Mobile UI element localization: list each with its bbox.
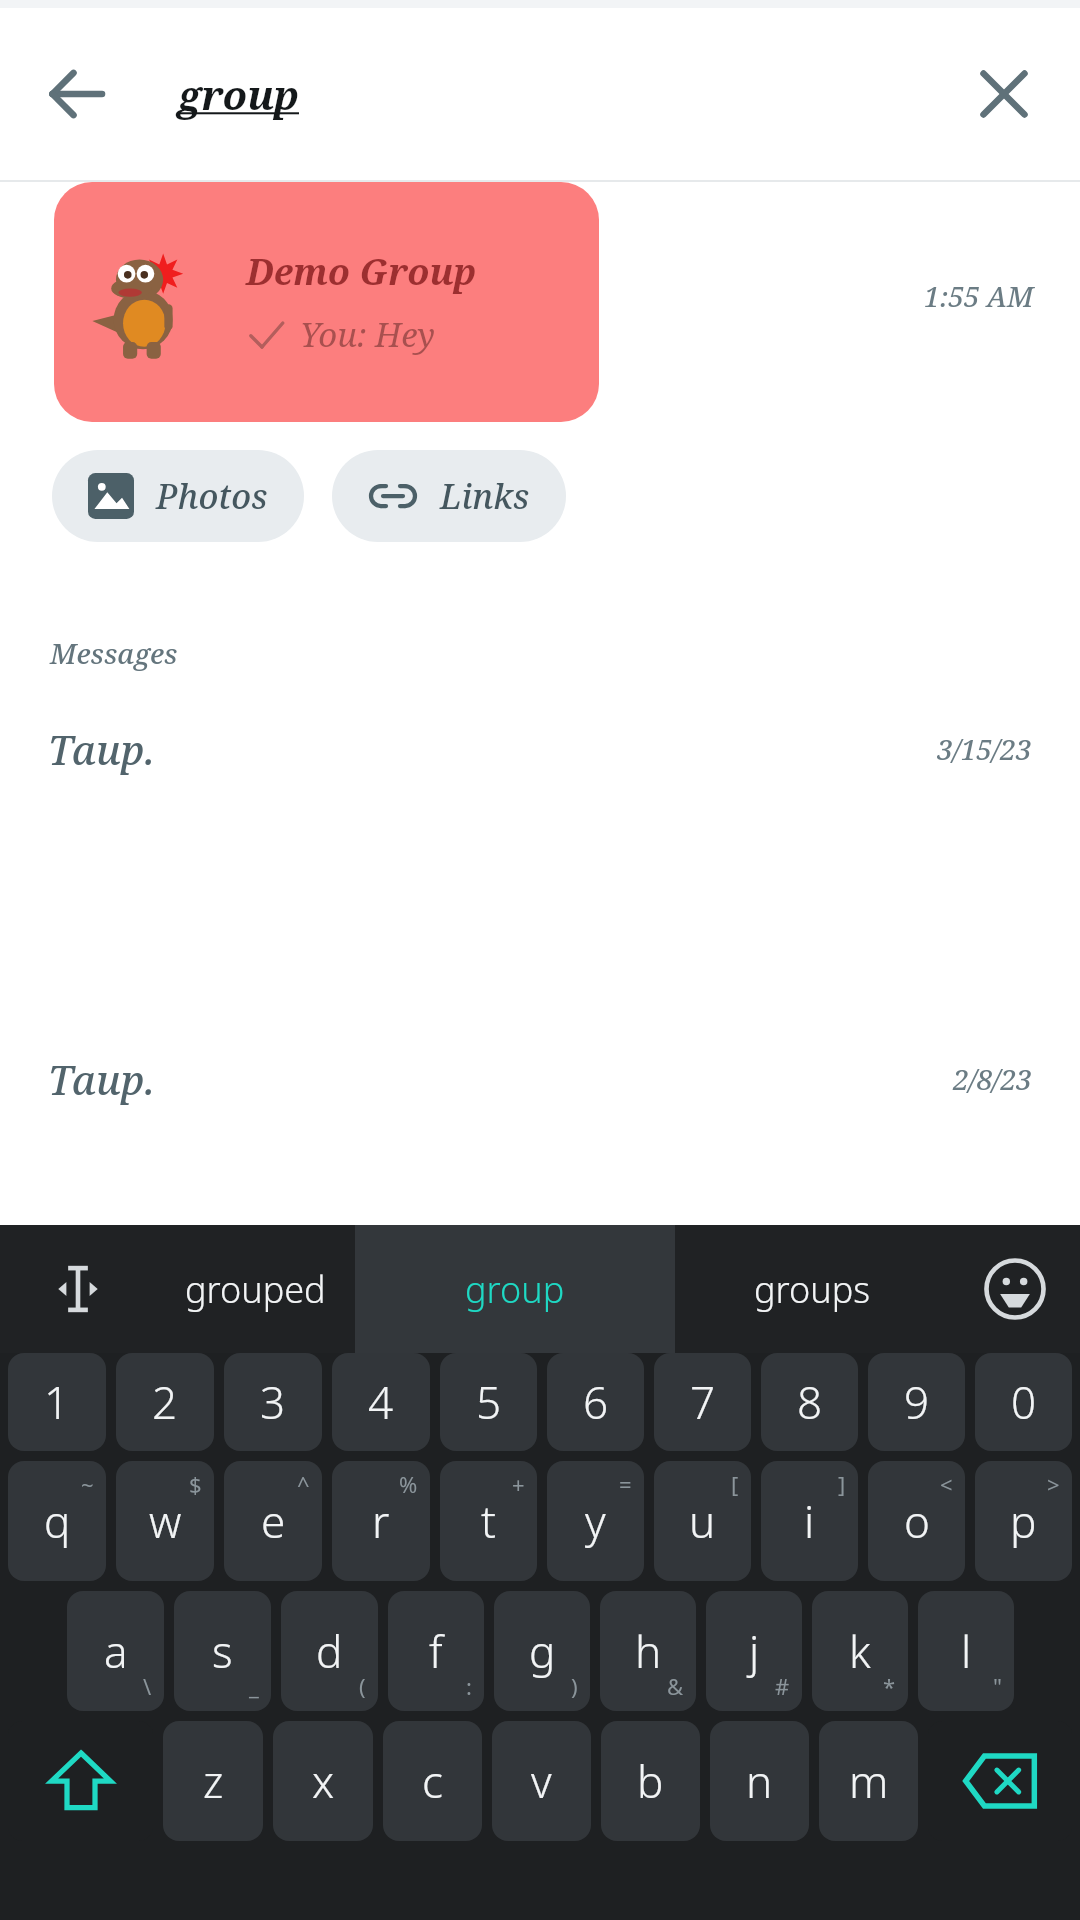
button[interactable]: 3 <box>224 1353 322 1451</box>
staticText: # <box>775 1671 790 1701</box>
button[interactable]: 0 <box>975 1353 1072 1451</box>
button[interactable]: f <box>388 1591 484 1711</box>
staticText: r <box>372 1491 390 1551</box>
button[interactable]: c <box>383 1721 482 1841</box>
staticText: grouped <box>185 1265 326 1314</box>
staticText: j <box>749 1621 760 1681</box>
button[interactable]: z <box>163 1721 263 1841</box>
staticText: e <box>261 1491 286 1551</box>
button[interactable]: 5 <box>440 1353 537 1451</box>
button[interactable]: Taup. <box>0 1044 1080 1114</box>
button[interactable]: grouped <box>155 1225 355 1353</box>
button[interactable]: Clear search <box>962 52 1046 136</box>
staticText: l <box>961 1621 972 1681</box>
staticText: group <box>465 1265 565 1314</box>
button[interactable]: h <box>600 1591 696 1711</box>
button[interactable]: g <box>494 1591 590 1711</box>
button[interactable]: s <box>174 1591 271 1711</box>
button[interactable]: 7 <box>654 1353 751 1451</box>
staticText: t <box>481 1491 496 1551</box>
button[interactable]: Backspace <box>928 1721 1072 1841</box>
button[interactable]: y <box>547 1461 644 1581</box>
staticText: 1 <box>44 1372 70 1432</box>
staticText: d <box>316 1621 343 1681</box>
staticText: s <box>212 1621 233 1681</box>
staticText: 9 <box>904 1372 930 1432</box>
button[interactable]: 6 <box>547 1353 644 1451</box>
staticText: Taup. <box>48 1052 155 1106</box>
staticText: 2 <box>152 1372 178 1432</box>
button[interactable]: l <box>918 1591 1014 1711</box>
button[interactable]: b <box>601 1721 700 1841</box>
staticText: " <box>993 1671 1002 1701</box>
staticText: [ <box>731 1469 739 1499</box>
staticText: a <box>104 1621 128 1681</box>
staticText: % <box>399 1469 418 1499</box>
staticText: ^ <box>297 1469 310 1499</box>
staticText: 3/15/23 <box>937 730 1032 768</box>
staticText: = <box>619 1469 632 1499</box>
button[interactable]: q <box>8 1461 106 1581</box>
staticText: 5 <box>476 1372 502 1432</box>
staticText: g <box>529 1621 556 1681</box>
staticText: b <box>637 1751 664 1811</box>
button[interactable]: Photos <box>52 450 304 542</box>
staticText: f <box>429 1621 443 1681</box>
staticText: & <box>667 1671 684 1701</box>
button[interactable]: d <box>281 1591 378 1711</box>
button[interactable]: group <box>355 1225 675 1353</box>
button[interactable]: Links <box>332 450 566 542</box>
staticText: v <box>531 1751 552 1811</box>
button[interactable]: 1 <box>8 1353 106 1451</box>
staticText: y <box>585 1491 606 1551</box>
button[interactable]: e <box>224 1461 322 1581</box>
staticText: ( <box>359 1671 366 1701</box>
button[interactable]: Cursor control <box>0 1225 155 1353</box>
staticText: groups <box>754 1265 871 1314</box>
button[interactable]: groups <box>675 1225 950 1353</box>
staticText: w <box>149 1491 182 1551</box>
button[interactable]: 2 <box>116 1353 214 1451</box>
staticText: Photos <box>156 473 268 519</box>
button[interactable]: 4 <box>332 1353 430 1451</box>
button[interactable]: j <box>706 1591 802 1711</box>
staticText: 1:55 AM <box>924 277 1034 315</box>
button[interactable]: i <box>761 1461 858 1581</box>
staticText: < <box>940 1469 953 1499</box>
staticText: \ <box>143 1671 152 1701</box>
button[interactable]: 8 <box>761 1353 858 1451</box>
button[interactable]: o <box>868 1461 965 1581</box>
staticText: o <box>904 1491 930 1551</box>
staticText: 8 <box>797 1372 823 1432</box>
staticText: 2/8/23 <box>953 1060 1032 1098</box>
button[interactable]: x <box>273 1721 373 1841</box>
button[interactable]: u <box>654 1461 751 1581</box>
button[interactable]: p <box>975 1461 1072 1581</box>
button[interactable]: Emoji <box>950 1225 1080 1353</box>
button[interactable]: v <box>492 1721 591 1841</box>
staticText: Links <box>440 473 530 519</box>
staticText: i <box>804 1491 815 1551</box>
button[interactable]: w <box>116 1461 214 1581</box>
staticText: q <box>44 1491 71 1551</box>
staticText: z <box>203 1751 224 1811</box>
button[interactable]: Demo Group <box>54 182 599 422</box>
staticText: _ <box>249 1671 259 1701</box>
staticText: : <box>466 1671 472 1701</box>
staticText: 7 <box>690 1372 716 1432</box>
staticText: k <box>849 1621 871 1681</box>
button[interactable]: 9 <box>868 1353 965 1451</box>
button[interactable]: m <box>819 1721 918 1841</box>
button[interactable]: r <box>332 1461 430 1581</box>
staticText: Taup. <box>48 722 155 776</box>
button[interactable]: Shift <box>8 1721 153 1841</box>
button[interactable]: n <box>710 1721 809 1841</box>
button[interactable]: a <box>67 1591 164 1711</box>
button[interactable]: k <box>812 1591 908 1711</box>
staticText: 4 <box>368 1372 394 1432</box>
staticText: + <box>512 1469 525 1499</box>
button[interactable]: t <box>440 1461 537 1581</box>
staticText: > <box>1047 1469 1060 1499</box>
button[interactable]: Back <box>34 52 118 136</box>
button[interactable]: Taup. <box>0 714 1080 784</box>
